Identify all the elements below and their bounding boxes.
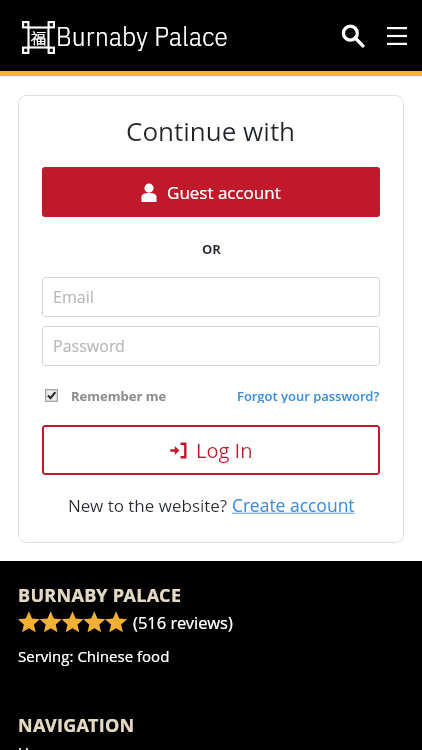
button[interactable]: Forgot your password?: [237, 387, 380, 403]
staticText: Serving: Chinese food: [18, 646, 170, 666]
staticText: Guest account: [167, 181, 281, 204]
staticText: (516 reviews): [133, 611, 233, 633]
staticText: OR: [202, 240, 221, 258]
button[interactable]: Search: [331, 14, 375, 58]
button[interactable]: Guest account: [42, 167, 380, 217]
staticText: Home: [18, 742, 61, 750]
staticText: Email: [53, 286, 94, 308]
staticText: 福: [31, 27, 47, 49]
button[interactable]: Password: [42, 326, 380, 366]
staticText: Log In: [196, 437, 253, 464]
staticText: Remember me: [71, 387, 167, 403]
staticText: Continue with: [126, 113, 296, 148]
staticText: BURNABY PALACE: [18, 583, 182, 608]
staticText: NAVIGATION: [18, 713, 135, 738]
button[interactable]: Open navigation menu: [375, 14, 418, 57]
button[interactable]: Create account: [232, 493, 355, 517]
staticText: New to the website?: [68, 494, 228, 517]
staticText: Burnaby Palace: [56, 18, 228, 53]
staticText: Password: [53, 335, 125, 357]
button[interactable]: Email: [42, 277, 380, 317]
button[interactable]: Log In: [42, 425, 380, 475]
button[interactable]: Remember me: [42, 387, 167, 403]
